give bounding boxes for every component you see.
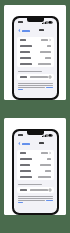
- button[interactable]: [17, 43, 54, 49]
- button[interactable]: [17, 187, 54, 193]
- button[interactable]: [17, 37, 54, 43]
- button[interactable]: Zurück zu Allgemein: [17, 29, 31, 32]
- button[interactable]: [17, 174, 54, 180]
- button[interactable]: [17, 162, 54, 168]
- button[interactable]: Zurück zu Allgemein: [17, 142, 31, 145]
- button[interactable]: [17, 49, 54, 55]
- button[interactable]: [17, 168, 54, 174]
- button[interactable]: [17, 156, 54, 162]
- button[interactable]: [17, 55, 54, 61]
- button[interactable]: [17, 74, 54, 80]
- button[interactable]: [17, 150, 54, 156]
- button[interactable]: [17, 61, 54, 67]
